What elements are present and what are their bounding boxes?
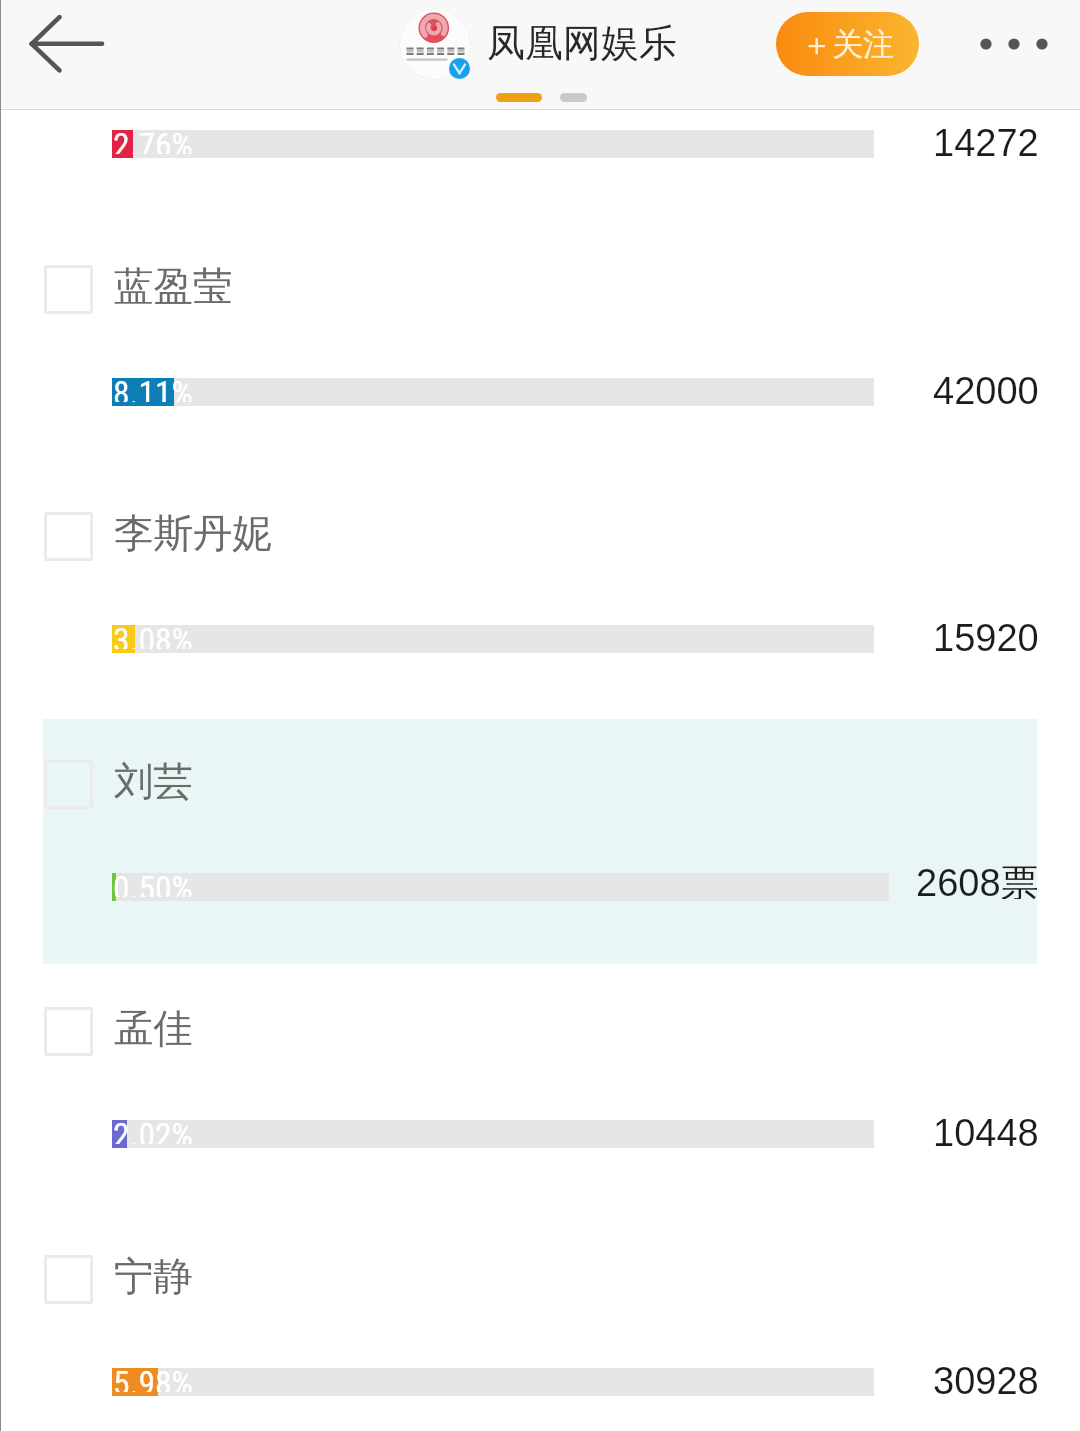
staticText: 2608票 bbox=[916, 859, 1039, 899]
staticText: 李斯丹妮 bbox=[114, 509, 272, 559]
staticText: 10448 bbox=[933, 1112, 1039, 1152]
staticText: 5.98% bbox=[113, 1364, 193, 1392]
staticText: 刘芸 bbox=[114, 757, 193, 807]
staticText: 15920 bbox=[933, 617, 1039, 657]
button[interactable]: Back bbox=[0, 0, 134, 95]
staticText: 2.02% bbox=[113, 1116, 193, 1144]
staticText: 42000 bbox=[933, 370, 1039, 410]
staticText: 14272 bbox=[933, 122, 1039, 162]
button[interactable]: 李斯丹妮 bbox=[44, 501, 1037, 563]
staticText: 30928 bbox=[933, 1360, 1039, 1400]
button[interactable]: 孟佳 bbox=[44, 996, 1037, 1058]
staticText: 凤凰网娱乐 bbox=[487, 19, 677, 67]
staticText: 3.08% bbox=[113, 621, 193, 649]
staticText: 蓝盈莹 bbox=[114, 262, 233, 312]
staticText: ＋关注 bbox=[801, 25, 894, 64]
staticText: 0.50% bbox=[113, 869, 193, 897]
button[interactable]: More options bbox=[950, 6, 1060, 82]
button[interactable]: 蓝盈莹 bbox=[44, 254, 1037, 316]
button[interactable]: 宁静 bbox=[44, 1244, 1037, 1306]
staticText: 2.76% bbox=[113, 126, 193, 154]
staticText: 8.11% bbox=[113, 374, 193, 402]
staticText: 宁静 bbox=[114, 1252, 193, 1302]
button[interactable]: 凤凰网娱乐 bbox=[395, 4, 685, 84]
staticText: 孟佳 bbox=[114, 1004, 193, 1054]
button[interactable]: ＋关注 bbox=[776, 12, 919, 76]
button[interactable]: 刘芸 bbox=[44, 749, 1037, 811]
